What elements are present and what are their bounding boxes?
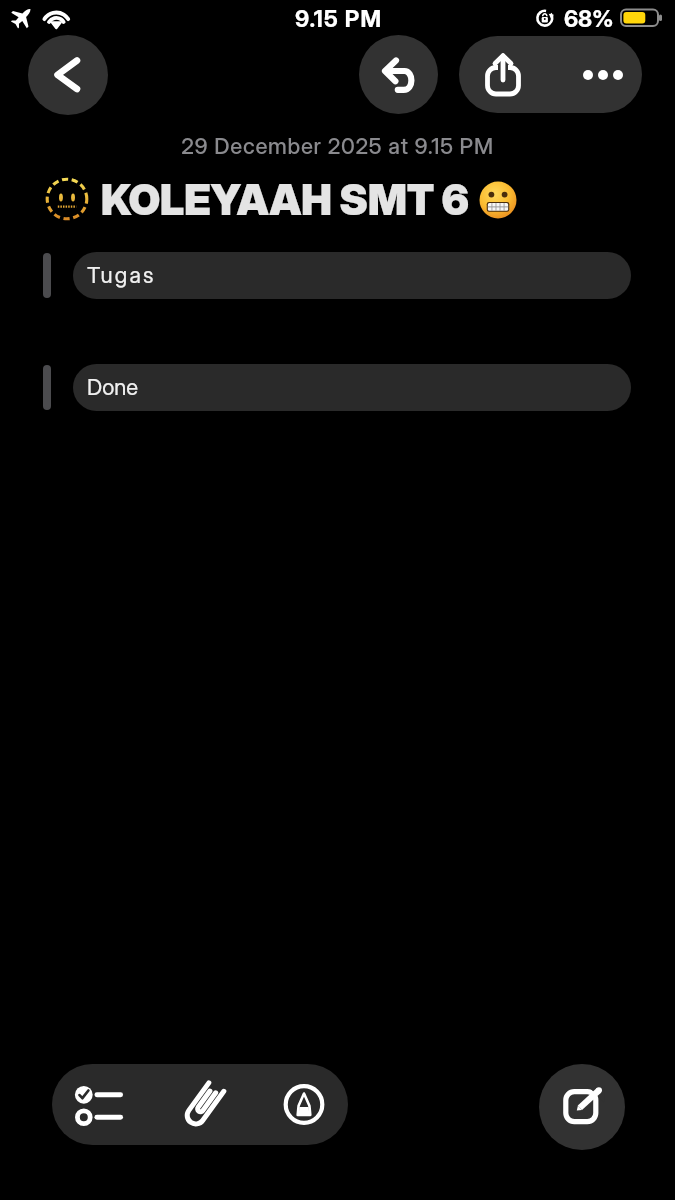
staticText: 68% (564, 5, 614, 33)
button[interactable]: Tugas (73, 252, 631, 299)
button[interactable]: Undo (359, 35, 438, 114)
staticText: 9.15 PM (295, 5, 383, 33)
staticText: Done (87, 374, 139, 401)
button[interactable]: More options (551, 36, 642, 113)
staticText: 29 December 2025 at 9.15 PM (0, 133, 675, 160)
button[interactable]: New note (539, 1064, 625, 1150)
button[interactable]: Markup (250, 1064, 348, 1145)
button[interactable]: Share (459, 36, 551, 113)
button[interactable]: Back (28, 35, 108, 115)
button[interactable]: Done (73, 364, 631, 411)
button[interactable]: Checklist (52, 1064, 151, 1145)
staticText: Tugas (87, 262, 156, 289)
staticText: KOLEYAAH SMT 6 (101, 174, 469, 225)
button[interactable]: Attach file (151, 1064, 250, 1145)
